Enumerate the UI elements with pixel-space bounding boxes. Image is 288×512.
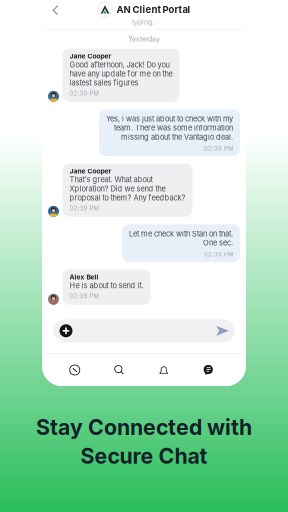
staticText: Let me check with Stan on that. bbox=[129, 229, 233, 238]
staticText: AN Client Portal bbox=[116, 4, 190, 15]
staticText: have any update for me on the bbox=[69, 69, 172, 78]
button[interactable]: Back bbox=[47, 0, 66, 29]
staticText: Stay Connected with bbox=[36, 414, 252, 440]
staticText: Good afternoon, Jack! Do you bbox=[69, 60, 169, 69]
staticText: 02:39 PM bbox=[69, 293, 98, 300]
staticText: 02:39 PM bbox=[69, 205, 98, 212]
staticText: 02:39 PM bbox=[204, 145, 233, 152]
staticText: Jane Cooper bbox=[69, 52, 111, 60]
staticText: Secure Chat bbox=[80, 443, 207, 469]
button[interactable]: Notifications bbox=[141, 354, 186, 386]
staticText: team. There was some information bbox=[114, 123, 233, 132]
staticText: Jane Cooper bbox=[69, 167, 111, 175]
button[interactable]: Dashboard bbox=[52, 354, 97, 386]
staticText: lastest sales figures bbox=[69, 78, 138, 87]
staticText: proposal to them? Any feedback? bbox=[69, 193, 185, 202]
staticText: typing.. bbox=[132, 17, 156, 26]
staticText: Yes, i was just about to check with my bbox=[106, 114, 233, 123]
staticText: Alex Bell bbox=[69, 273, 98, 281]
staticText: He is about to send it. bbox=[69, 281, 143, 290]
staticText: 02:39 PM bbox=[204, 251, 233, 258]
staticText: Yesterday bbox=[128, 35, 160, 43]
staticText: Xploration? Did we send the bbox=[69, 184, 165, 193]
staticText: missing about the Vantagio deal. bbox=[121, 132, 233, 141]
button[interactable]: Add attachment bbox=[58, 323, 73, 338]
button[interactable]: Messages bbox=[186, 354, 230, 386]
staticText: 02:39 PM bbox=[69, 90, 98, 97]
button[interactable]: Search bbox=[97, 354, 141, 386]
staticText: One sec. bbox=[203, 238, 233, 247]
button[interactable]: Send bbox=[215, 324, 229, 337]
staticText: That's great. What about bbox=[69, 175, 152, 184]
